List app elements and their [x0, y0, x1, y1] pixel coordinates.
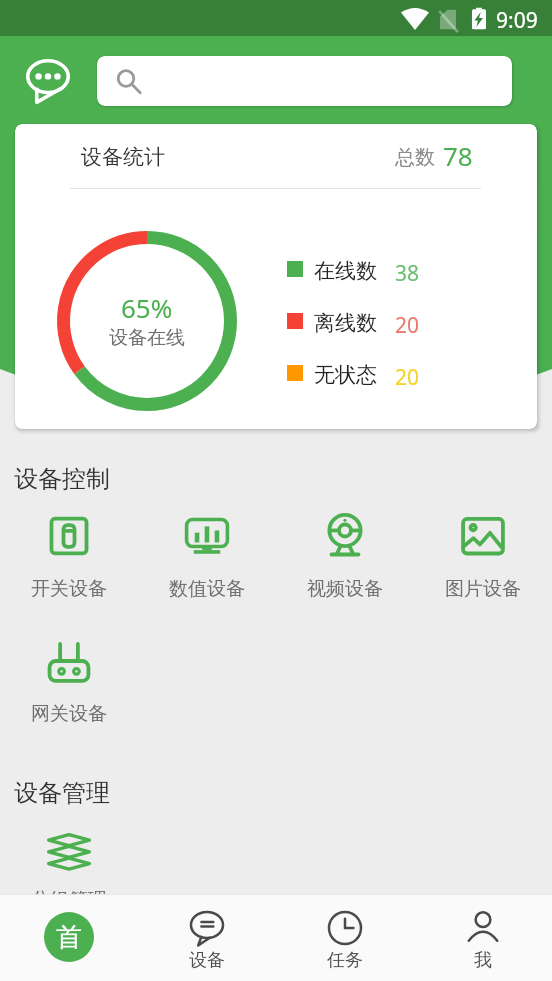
- button[interactable]: 设备: [138, 895, 276, 981]
- staticText: 设备在线: [109, 326, 185, 350]
- staticText: 数值设备: [169, 577, 245, 601]
- staticText: 38: [395, 259, 420, 288]
- button[interactable]: 视频设备: [276, 512, 414, 601]
- staticText: 网关设备: [31, 702, 107, 726]
- button[interactable]: 消息: [25, 58, 71, 104]
- staticText: 首: [56, 921, 82, 954]
- staticText: 9:09: [496, 6, 538, 35]
- staticText: 离线数: [314, 310, 377, 336]
- button[interactable]: [97, 56, 512, 106]
- staticText: 我: [474, 949, 492, 972]
- staticText: 图片设备: [445, 577, 521, 601]
- staticText: 总数: [395, 145, 435, 170]
- button[interactable]: 我: [414, 895, 552, 981]
- staticText: 设备管理: [14, 778, 110, 808]
- button[interactable]: 图片设备: [414, 512, 552, 601]
- staticText: 无状态: [314, 362, 377, 388]
- staticText: 78: [443, 138, 473, 173]
- button[interactable]: 任务: [276, 895, 414, 981]
- button[interactable]: 网关设备: [0, 637, 138, 726]
- staticText: 分组管理: [31, 888, 107, 912]
- staticText: 20: [395, 311, 420, 340]
- staticText: 开关设备: [31, 577, 107, 601]
- staticText: 在线数: [314, 258, 377, 284]
- staticText: 65%: [121, 290, 173, 325]
- staticText: 20: [395, 363, 420, 392]
- staticText: 视频设备: [307, 577, 383, 601]
- button[interactable]: 开关设备: [0, 512, 138, 601]
- staticText: 设备控制: [14, 464, 110, 494]
- button[interactable]: 数值设备: [138, 512, 276, 601]
- staticText: 设备: [189, 949, 225, 972]
- button[interactable]: 分组管理: [0, 823, 138, 912]
- button[interactable]: 首页: [0, 895, 138, 981]
- staticText: 设备统计: [81, 144, 165, 170]
- staticText: 任务: [327, 949, 363, 972]
